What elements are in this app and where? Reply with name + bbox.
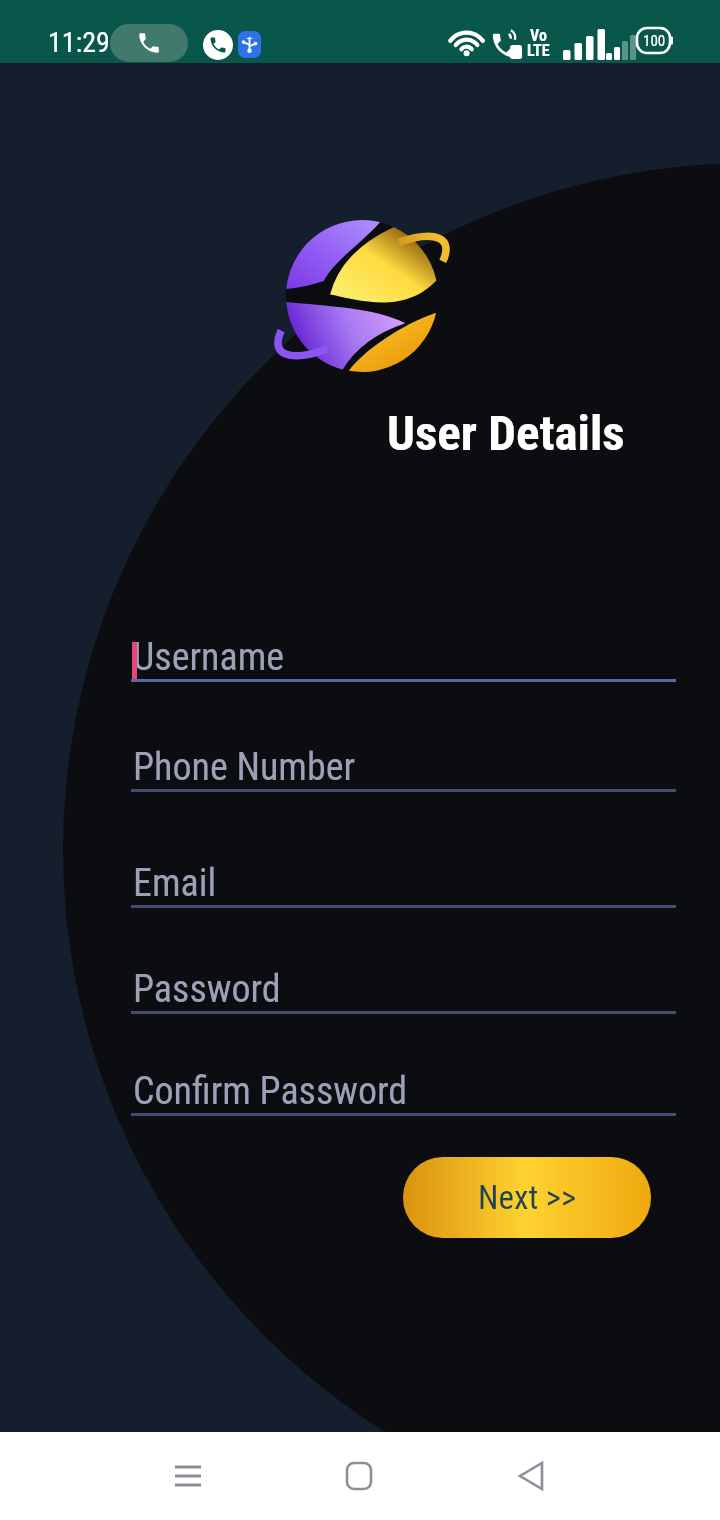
staticText: Username xyxy=(133,635,285,680)
staticText: Next >> xyxy=(478,1178,577,1217)
staticText: Confirm Password xyxy=(133,1069,408,1114)
staticText: LTE xyxy=(527,41,550,60)
button[interactable] xyxy=(518,1433,544,1519)
button[interactable]: Password xyxy=(131,964,676,1015)
button[interactable]: Email xyxy=(131,858,676,909)
staticText: Email xyxy=(133,861,217,906)
button[interactable]: Phone Number xyxy=(131,742,676,793)
staticText: Password xyxy=(133,967,281,1012)
staticText: 11:29 xyxy=(48,26,110,59)
staticText: User Details xyxy=(387,405,625,462)
button[interactable]: Next >> xyxy=(403,1157,651,1238)
button[interactable]: Confirm Password xyxy=(131,1066,676,1117)
staticText: 100 xyxy=(643,32,666,50)
button[interactable] xyxy=(347,1433,373,1519)
staticText: Phone Number xyxy=(133,745,356,790)
button[interactable] xyxy=(175,1433,203,1519)
button[interactable]: Username xyxy=(131,632,676,683)
staticText: Vo xyxy=(530,26,547,45)
